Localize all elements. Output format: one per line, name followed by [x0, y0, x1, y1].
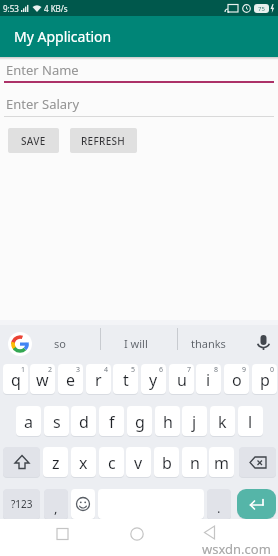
staticText: y	[149, 369, 158, 391]
button[interactable]: a	[16, 406, 41, 436]
staticText: r	[95, 369, 102, 391]
staticText: REFRESH	[81, 134, 126, 148]
button[interactable]: k	[210, 406, 235, 436]
button[interactable]: so	[54, 336, 66, 351]
button[interactable]: n	[182, 447, 207, 477]
button[interactable]: s	[44, 406, 69, 436]
button[interactable]: b	[154, 447, 179, 477]
button[interactable]: r	[86, 364, 111, 394]
staticText: wsxdn.com	[202, 540, 271, 556]
staticText: o	[232, 369, 242, 391]
staticText: 9	[242, 365, 247, 375]
button[interactable]	[71, 489, 95, 519]
staticText: g	[135, 411, 145, 433]
staticText: q	[11, 369, 21, 391]
button[interactable]	[237, 489, 276, 519]
staticText: h	[163, 411, 173, 433]
staticText: z	[52, 452, 60, 474]
button[interactable]: e	[58, 364, 83, 394]
staticText: u	[177, 369, 187, 391]
staticText: s	[53, 411, 61, 433]
staticText: ,	[54, 499, 58, 517]
button[interactable]: l	[238, 406, 263, 436]
button[interactable]	[200, 522, 220, 542]
staticText: 0	[270, 365, 275, 375]
staticText: e	[66, 369, 76, 391]
staticText: a	[24, 411, 33, 433]
staticText: Enter Salary	[6, 95, 80, 113]
button[interactable]	[127, 524, 147, 544]
button[interactable]: y	[141, 364, 166, 394]
staticText: m	[214, 452, 229, 474]
staticText: 4	[104, 365, 109, 375]
staticText: v	[134, 452, 143, 474]
staticText: 4 KB/s	[44, 3, 68, 14]
staticText: 2	[48, 365, 53, 375]
button[interactable]: p	[252, 364, 277, 394]
staticText: k	[218, 411, 227, 433]
staticText: .	[217, 499, 221, 517]
button[interactable]	[52, 524, 72, 544]
button[interactable]: u	[169, 364, 194, 394]
staticText: d	[79, 411, 89, 433]
button[interactable]: m	[209, 447, 234, 477]
staticText: Enter Name	[6, 61, 79, 79]
button[interactable]: v	[126, 447, 151, 477]
button[interactable]: i	[196, 364, 221, 394]
staticText: 5	[131, 365, 136, 375]
button[interactable]	[253, 333, 273, 353]
staticText: t	[123, 369, 129, 391]
button[interactable]	[3, 447, 40, 477]
button[interactable]: z	[43, 447, 68, 477]
staticText: My Application	[14, 27, 112, 46]
button[interactable]: thanks	[191, 336, 226, 351]
button[interactable]: o	[224, 364, 249, 394]
staticText: SAVE	[21, 134, 46, 148]
staticText: 8	[214, 365, 219, 375]
staticText: 1	[21, 365, 26, 375]
button[interactable]: x	[71, 447, 96, 477]
button[interactable]	[8, 332, 32, 356]
staticText: 7	[187, 365, 192, 375]
button[interactable]	[239, 447, 276, 477]
staticText: n	[190, 452, 200, 474]
staticText: p	[260, 369, 270, 391]
staticText: b	[162, 452, 172, 474]
staticText: c	[108, 452, 116, 474]
button[interactable]: REFRESH	[70, 128, 137, 153]
staticText: ?123	[11, 497, 33, 511]
button[interactable]: ,	[44, 489, 68, 519]
staticText: w	[36, 369, 49, 391]
button[interactable]: j	[182, 406, 207, 436]
staticText: j	[192, 411, 197, 433]
button[interactable]: t	[113, 364, 138, 394]
button[interactable]: q	[3, 364, 28, 394]
button[interactable]: w	[30, 364, 55, 394]
button[interactable]: ?123	[3, 489, 40, 519]
button[interactable]: d	[71, 406, 96, 436]
button[interactable]: SAVE	[8, 128, 59, 153]
button[interactable]: c	[99, 447, 124, 477]
staticText: l	[248, 411, 253, 433]
staticText: f	[109, 411, 115, 433]
staticText: 3	[76, 365, 81, 375]
button[interactable]: I will	[124, 336, 148, 351]
button[interactable]: My Application	[0, 16, 278, 57]
staticText: 75	[258, 5, 265, 13]
button[interactable]: .	[207, 489, 231, 519]
staticText: 9:53	[3, 3, 19, 14]
button[interactable]: h	[155, 406, 180, 436]
staticText: 6	[159, 365, 164, 375]
staticText: x	[79, 452, 88, 474]
button[interactable]: f	[99, 406, 124, 436]
staticText: i	[206, 369, 211, 391]
button[interactable]: g	[127, 406, 152, 436]
